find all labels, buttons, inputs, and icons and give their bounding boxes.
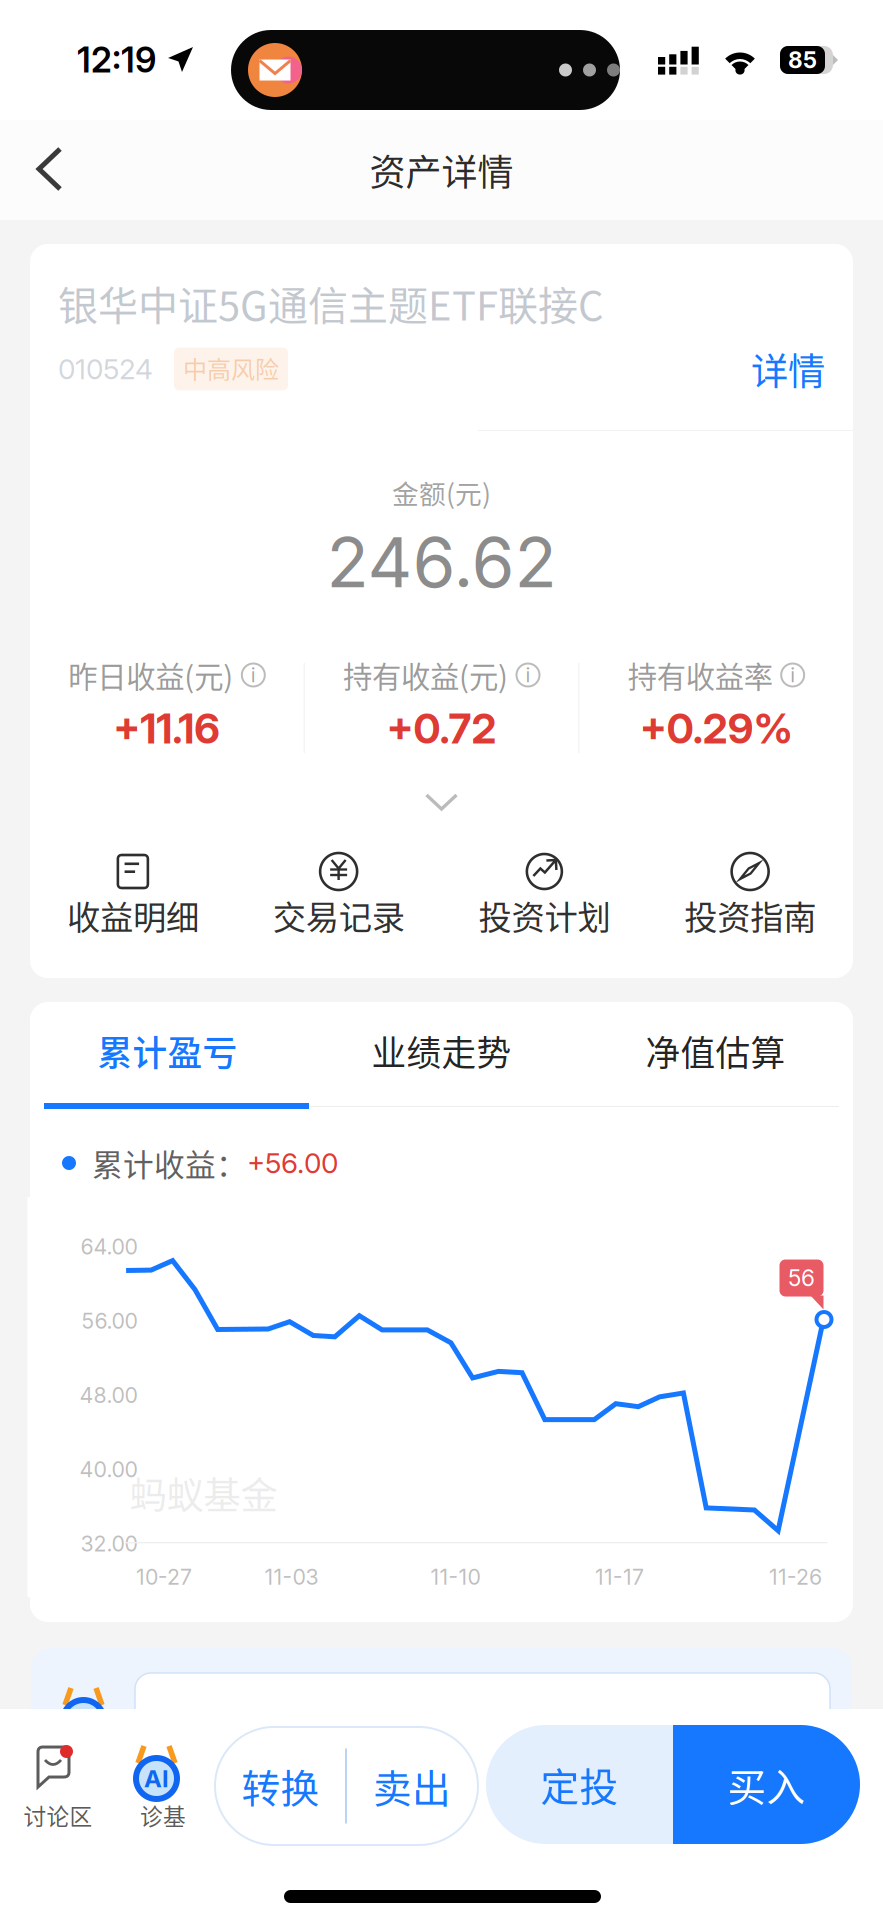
- staticText: 11-10: [430, 1564, 480, 1590]
- staticText: 昨日收益(元): [68, 654, 233, 696]
- staticText: +56.00: [247, 1146, 338, 1180]
- staticText: 银华中证5G通信主题ETF联接C: [58, 274, 604, 332]
- staticText: 定投: [540, 1756, 618, 1812]
- staticText: 买入: [727, 1756, 805, 1812]
- button[interactable]: 讨论区: [6, 1714, 110, 1834]
- staticText: 32.00: [80, 1531, 137, 1557]
- staticText: 85: [788, 46, 817, 74]
- staticText: 10-27: [136, 1564, 192, 1590]
- staticText: 12:19: [77, 39, 156, 81]
- button[interactable]: 详情: [723, 336, 825, 402]
- staticText: i: [525, 663, 530, 687]
- staticText: 转换: [241, 1758, 319, 1814]
- staticText: 48.00: [79, 1382, 137, 1408]
- staticText: 业绩走势: [371, 1026, 511, 1076]
- button[interactable]: 定投: [486, 1725, 673, 1844]
- staticText: 64.00: [80, 1234, 137, 1260]
- staticText: 详情: [751, 342, 825, 396]
- button[interactable]: 交易记录: [236, 849, 442, 939]
- staticText: 010524: [58, 352, 153, 386]
- button[interactable]: AI: [111, 1714, 215, 1834]
- button[interactable]: 累计盈亏: [30, 1016, 304, 1086]
- staticText: 蚂蚁基金: [129, 1466, 277, 1520]
- button[interactable]: 投资指南: [647, 849, 853, 939]
- staticText: 累计盈亏: [97, 1026, 237, 1076]
- button[interactable]: 收益明细: [30, 849, 236, 939]
- staticText: i: [251, 663, 256, 687]
- staticText: +11.16: [113, 703, 220, 753]
- button[interactable]: 转换: [216, 1727, 345, 1845]
- staticText: 资产详情: [369, 144, 513, 196]
- staticText: 累计收益：: [92, 1141, 247, 1185]
- staticText: +0.29%: [640, 703, 793, 753]
- staticText: +0.72: [386, 703, 496, 753]
- button[interactable]: Expand: [414, 783, 468, 823]
- staticText: 持有收益(元): [343, 654, 508, 696]
- button[interactable]: 业绩走势: [304, 1016, 578, 1086]
- button[interactable]: 净值估算: [578, 1016, 852, 1086]
- staticText: i: [790, 663, 795, 687]
- staticText: 讨论区: [23, 1799, 92, 1831]
- staticText: 卖出: [373, 1758, 451, 1814]
- staticText: 投资计划: [478, 891, 610, 939]
- staticText: 净值估算: [645, 1026, 785, 1076]
- staticText: 金额(元): [392, 473, 491, 512]
- staticText: 投资指南: [684, 891, 816, 939]
- staticText: 56: [788, 1264, 815, 1292]
- staticText: 11-17: [595, 1564, 644, 1590]
- staticText: 11-03: [264, 1564, 318, 1590]
- button[interactable]: 投资计划: [441, 849, 647, 939]
- staticText: 中高风险: [183, 351, 279, 385]
- staticText: 交易记录: [273, 891, 405, 939]
- staticText: 56.00: [81, 1308, 137, 1334]
- button[interactable]: 卖出: [347, 1727, 477, 1845]
- staticText: 持有收益率: [628, 654, 773, 696]
- staticText: AI: [144, 1764, 169, 1793]
- button[interactable]: Back: [0, 120, 92, 220]
- staticText: 11-26: [769, 1564, 822, 1590]
- staticText: 246.62: [326, 520, 556, 604]
- staticText: 诊基: [140, 1799, 186, 1831]
- staticText: 40.00: [79, 1457, 137, 1482]
- staticText: 收益明细: [67, 891, 199, 939]
- staticText: AI: [71, 1706, 96, 1735]
- button[interactable]: 买入: [673, 1725, 860, 1844]
- staticText: 5G板块追涨政策利好: [169, 1699, 503, 1751]
